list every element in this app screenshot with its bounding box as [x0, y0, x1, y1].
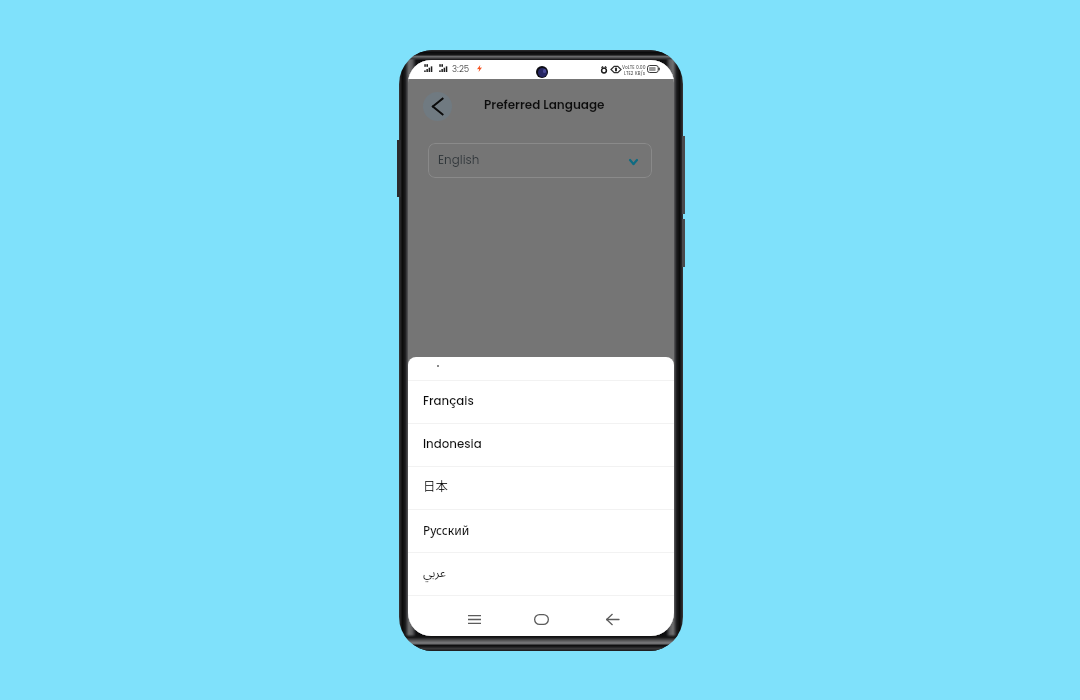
- staticText: VoLTE: [622, 64, 635, 70]
- staticText: English: [438, 152, 480, 169]
- button[interactable]: English: [428, 143, 652, 178]
- button[interactable]: Back: [595, 602, 629, 636]
- staticText: Preferred Language: [484, 96, 605, 113]
- button[interactable]: Recent apps: [457, 602, 491, 636]
- button[interactable]: Français: [408, 381, 674, 423]
- staticText: Русский: [423, 522, 470, 538]
- staticText: Français: [423, 393, 474, 410]
- button[interactable]: عربي: [408, 553, 674, 595]
- staticText: LTE2: [624, 70, 634, 76]
- staticText: KB/s: [635, 70, 646, 76]
- button[interactable]: 日本: [408, 467, 674, 509]
- button[interactable]: Indonesia: [408, 424, 674, 466]
- staticText: عربي: [423, 560, 446, 586]
- button[interactable]: Back: [423, 92, 452, 121]
- staticText: 0.00: [636, 64, 646, 70]
- button[interactable]: Русский: [408, 510, 674, 552]
- staticText: 3:25: [452, 63, 470, 75]
- button[interactable]: Home: [524, 602, 558, 636]
- staticText: Indonesia: [423, 436, 482, 453]
- staticText: 日本: [423, 477, 448, 495]
